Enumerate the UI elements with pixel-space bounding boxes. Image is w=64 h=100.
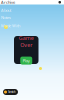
button[interactable]: Play	[20, 57, 32, 65]
staticText: Game	[19, 34, 34, 41]
staticText: Over	[20, 41, 32, 49]
staticText: Scratch	[8, 90, 16, 94]
button[interactable]: Scratch	[3, 89, 18, 95]
button[interactable]: Menu	[58, 1, 61, 3]
staticText: Made With	[1, 23, 20, 28]
staticText: Archive	[1, 0, 15, 5]
staticText: Play	[23, 58, 30, 63]
staticText: Notes	[1, 15, 11, 20]
staticText: About	[1, 7, 11, 13]
